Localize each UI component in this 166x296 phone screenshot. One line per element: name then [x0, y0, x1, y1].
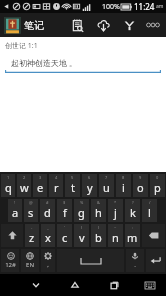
- button[interactable]: 4: [49, 174, 63, 197]
- staticText: 12#: [5, 261, 16, 269]
- staticText: 2: [23, 175, 26, 180]
- staticText: *: [114, 200, 117, 205]
- staticText: 100%: [102, 2, 120, 12]
- button[interactable]: $: [57, 199, 72, 222]
- staticText: @: [29, 200, 33, 205]
- staticText: !: [14, 200, 16, 205]
- staticText: a: [12, 205, 19, 220]
- button[interactable]: *: [108, 199, 123, 222]
- staticText: 3: [39, 175, 42, 180]
- button[interactable]: 2: [17, 174, 31, 197]
- staticText: p: [154, 180, 161, 195]
- button[interactable]: 8: [116, 174, 131, 197]
- button[interactable]: Download: [90, 13, 116, 37]
- button[interactable]: ?: [125, 199, 140, 222]
- staticText: ): [98, 225, 100, 230]
- staticText: -: [31, 225, 33, 230]
- button[interactable]: 0: [150, 174, 165, 197]
- staticText: q: [5, 180, 12, 195]
- staticText: t: [71, 180, 75, 195]
- button[interactable]: Switch keyboard: [136, 274, 164, 296]
- staticText: o: [137, 180, 144, 195]
- staticText: _: [47, 225, 49, 230]
- staticText: i: [122, 180, 125, 195]
- button[interactable]: (: [74, 224, 89, 247]
- button[interactable]: Language: [21, 249, 39, 272]
- staticText: b: [95, 230, 102, 245]
- staticText: /: [149, 200, 151, 205]
- button[interactable]: -: [25, 224, 39, 247]
- button[interactable]: :: [125, 224, 140, 247]
- button[interactable]: Space: [57, 249, 124, 272]
- button[interactable]: %: [74, 199, 89, 222]
- staticText: 4: [55, 175, 58, 180]
- staticText: k: [130, 205, 136, 220]
- button[interactable]: Voice input: [126, 249, 144, 272]
- button[interactable]: &: [91, 199, 106, 222]
- staticText: g: [78, 205, 85, 220]
- staticText: %: [80, 200, 84, 205]
- staticText: 11:24: [134, 1, 155, 12]
- button[interactable]: 9: [133, 174, 148, 197]
- staticText: ?: [132, 200, 134, 205]
- staticText: 笔记: [24, 19, 44, 32]
- staticText: v: [79, 230, 85, 245]
- button[interactable]: Hide keyboard: [21, 274, 50, 296]
- staticText: :: [132, 225, 134, 230]
- button[interactable]: @: [24, 199, 38, 222]
- staticText: $: [63, 200, 66, 205]
- button[interactable]: 起初神创造天地 。: [5, 57, 161, 73]
- button[interactable]: Home: [61, 274, 89, 296]
- staticText: ~: [114, 225, 117, 230]
- staticText: (: [81, 225, 83, 230]
- button[interactable]: 6: [82, 174, 97, 197]
- staticText: r: [54, 180, 59, 195]
- button[interactable]: 7: [99, 174, 114, 197]
- button[interactable]: Share: [116, 13, 142, 37]
- staticText: ': [64, 225, 65, 230]
- staticText: 0: [156, 175, 159, 180]
- button[interactable]: More options: [142, 13, 164, 37]
- staticText: &: [97, 200, 100, 205]
- button[interactable]: Settings: [41, 249, 55, 272]
- button[interactable]: _: [41, 224, 55, 247]
- staticText: #: [46, 200, 49, 205]
- staticText: y: [87, 180, 93, 195]
- button[interactable]: 5: [65, 174, 80, 197]
- staticText: d: [44, 205, 51, 220]
- staticText: 5: [71, 175, 74, 180]
- staticText: c: [62, 230, 68, 245]
- button[interactable]: Recent apps: [100, 274, 128, 296]
- staticText: 7: [105, 175, 108, 180]
- staticText: u: [103, 180, 110, 195]
- button[interactable]: 3: [33, 174, 47, 197]
- button[interactable]: Enter: [146, 249, 165, 272]
- button[interactable]: Backspace: [142, 224, 165, 247]
- staticText: f: [63, 205, 67, 220]
- button[interactable]: App icon: [3, 16, 21, 34]
- staticText: n: [112, 230, 119, 245]
- button[interactable]: Shift: [1, 224, 23, 247]
- button[interactable]: Symbols: [1, 249, 19, 272]
- staticText: EN: [26, 261, 34, 269]
- button[interactable]: !: [8, 199, 22, 222]
- staticText: h: [95, 205, 102, 220]
- button[interactable]: #: [40, 199, 55, 222]
- staticText: j: [114, 205, 117, 220]
- staticText: e: [37, 180, 44, 195]
- staticText: 起初神创造天地 。: [11, 57, 78, 68]
- staticText: l: [148, 205, 151, 220]
- staticText: x: [45, 230, 51, 245]
- button[interactable]: ): [91, 224, 106, 247]
- staticText: w: [20, 180, 29, 195]
- button[interactable]: 1: [1, 174, 15, 197]
- button[interactable]: ': [57, 224, 72, 247]
- button[interactable]: Search notes: [64, 13, 90, 37]
- staticText: .: [134, 261, 136, 269]
- button[interactable]: /: [142, 199, 157, 222]
- button[interactable]: ~: [108, 224, 123, 247]
- staticText: s: [28, 205, 34, 220]
- staticText: 创世记 1:1: [5, 41, 38, 51]
- staticText: 8: [122, 175, 125, 180]
- staticText: ,: [47, 261, 49, 269]
